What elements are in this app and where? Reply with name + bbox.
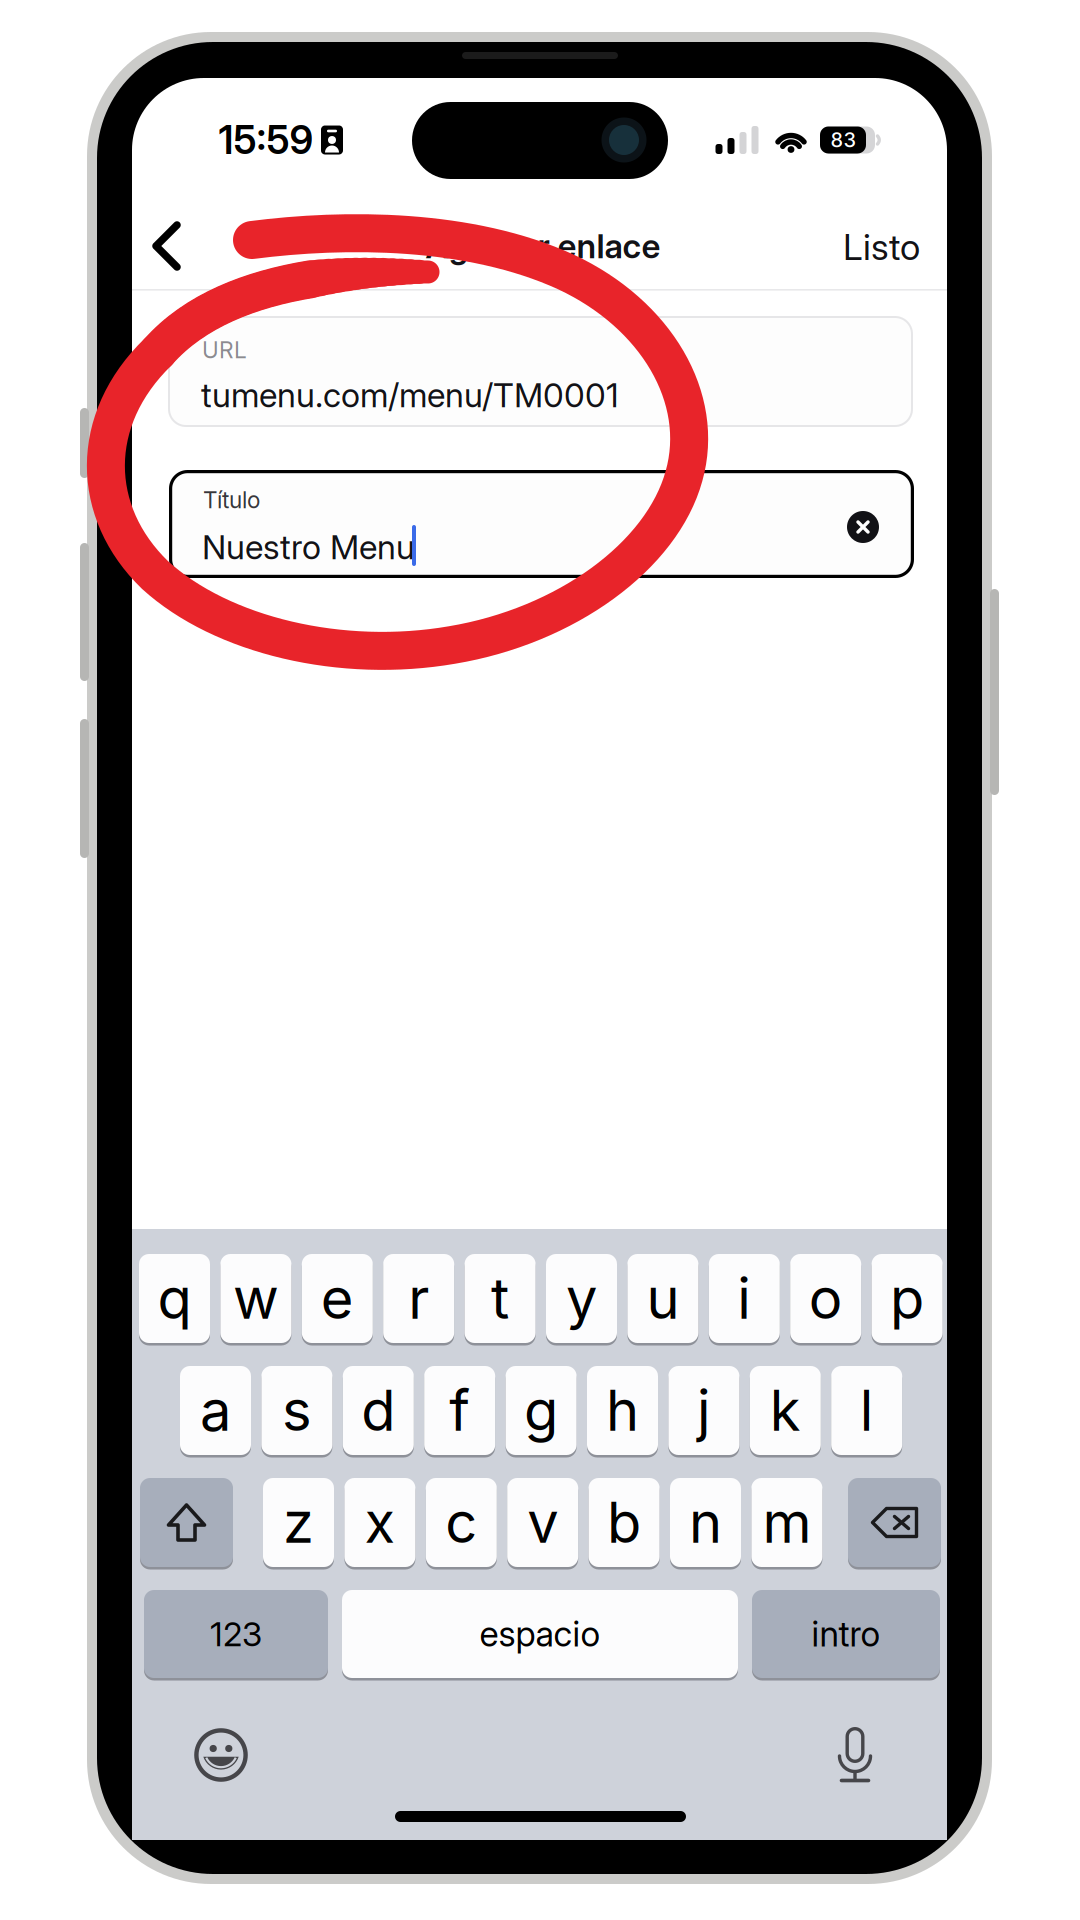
staticText: w [233,1265,279,1332]
staticText: o [809,1265,843,1332]
staticText: 15:59 [218,117,313,163]
button[interactable]: o [790,1254,861,1346]
staticText: e [321,1265,354,1332]
button[interactable] [169,470,914,578]
staticText: b [607,1489,641,1556]
button[interactable]: e [302,1254,373,1346]
staticText: j [697,1377,711,1444]
button[interactable]: b [589,1478,660,1570]
button[interactable]: k [750,1366,821,1458]
button[interactable]: d [343,1366,414,1458]
button[interactable]: u [627,1254,698,1346]
staticText: u [646,1265,679,1332]
staticText: p [890,1265,924,1332]
button[interactable]: g [506,1366,577,1458]
button[interactable] [168,316,913,427]
staticText: a [200,1377,231,1444]
button[interactable]: p [872,1254,943,1346]
staticText: tumenu.com/menu/TM0001 [201,375,619,415]
staticText: r [408,1265,429,1332]
button[interactable]: f [424,1366,495,1458]
staticText: Listo [843,225,920,269]
staticText: v [527,1489,558,1556]
button[interactable]: Listo [770,207,920,287]
button[interactable]: x [344,1478,415,1570]
button[interactable]: i [709,1254,780,1346]
staticText: m [762,1489,811,1556]
button[interactable]: h [587,1366,658,1458]
staticText: 83 [830,128,856,152]
button[interactable]: Emoji [193,1727,249,1783]
button[interactable]: a [180,1366,251,1458]
button[interactable]: c [426,1478,497,1570]
staticText: 123 [210,1614,262,1654]
staticText: f [449,1377,470,1444]
button[interactable]: w [220,1254,291,1346]
button[interactable]: s [261,1366,332,1458]
staticText: q [157,1265,191,1332]
staticText: l [860,1377,874,1444]
button[interactable]: espacio [342,1590,738,1681]
button[interactable]: Dictado [833,1726,877,1784]
staticText: s [282,1377,312,1444]
staticText: intro [811,1613,880,1655]
staticText: z [283,1489,314,1556]
button[interactable]: j [668,1366,739,1458]
staticText: Nuestro Menu [202,527,415,567]
button[interactable]: Mayúsculas [140,1478,233,1570]
staticText: g [524,1377,558,1444]
button[interactable]: v [507,1478,578,1570]
staticText: URL [202,336,247,364]
staticText: h [606,1377,639,1444]
button[interactable]: Borrar [848,1478,941,1570]
staticText: Agregar enlace [425,226,660,266]
staticText: i [737,1265,751,1332]
button[interactable]: Atrás [133,204,217,288]
button[interactable]: z [263,1478,334,1570]
button[interactable]: 123 [144,1590,328,1681]
staticText: t [491,1265,509,1332]
staticText: n [689,1489,722,1556]
button[interactable]: q [139,1254,210,1346]
staticText: k [770,1377,801,1444]
staticText: x [364,1489,395,1556]
button[interactable]: m [751,1478,822,1570]
staticText: d [361,1377,395,1444]
button[interactable]: l [831,1366,902,1458]
button[interactable]: n [670,1478,741,1570]
staticText: y [566,1265,597,1332]
button[interactable]: t [465,1254,536,1346]
button[interactable]: r [383,1254,454,1346]
button[interactable]: Borrar texto [841,505,885,549]
button[interactable]: y [546,1254,617,1346]
button[interactable]: intro [752,1590,940,1681]
staticText: Título [203,486,260,514]
staticText: espacio [479,1613,600,1655]
staticText: c [445,1489,477,1556]
